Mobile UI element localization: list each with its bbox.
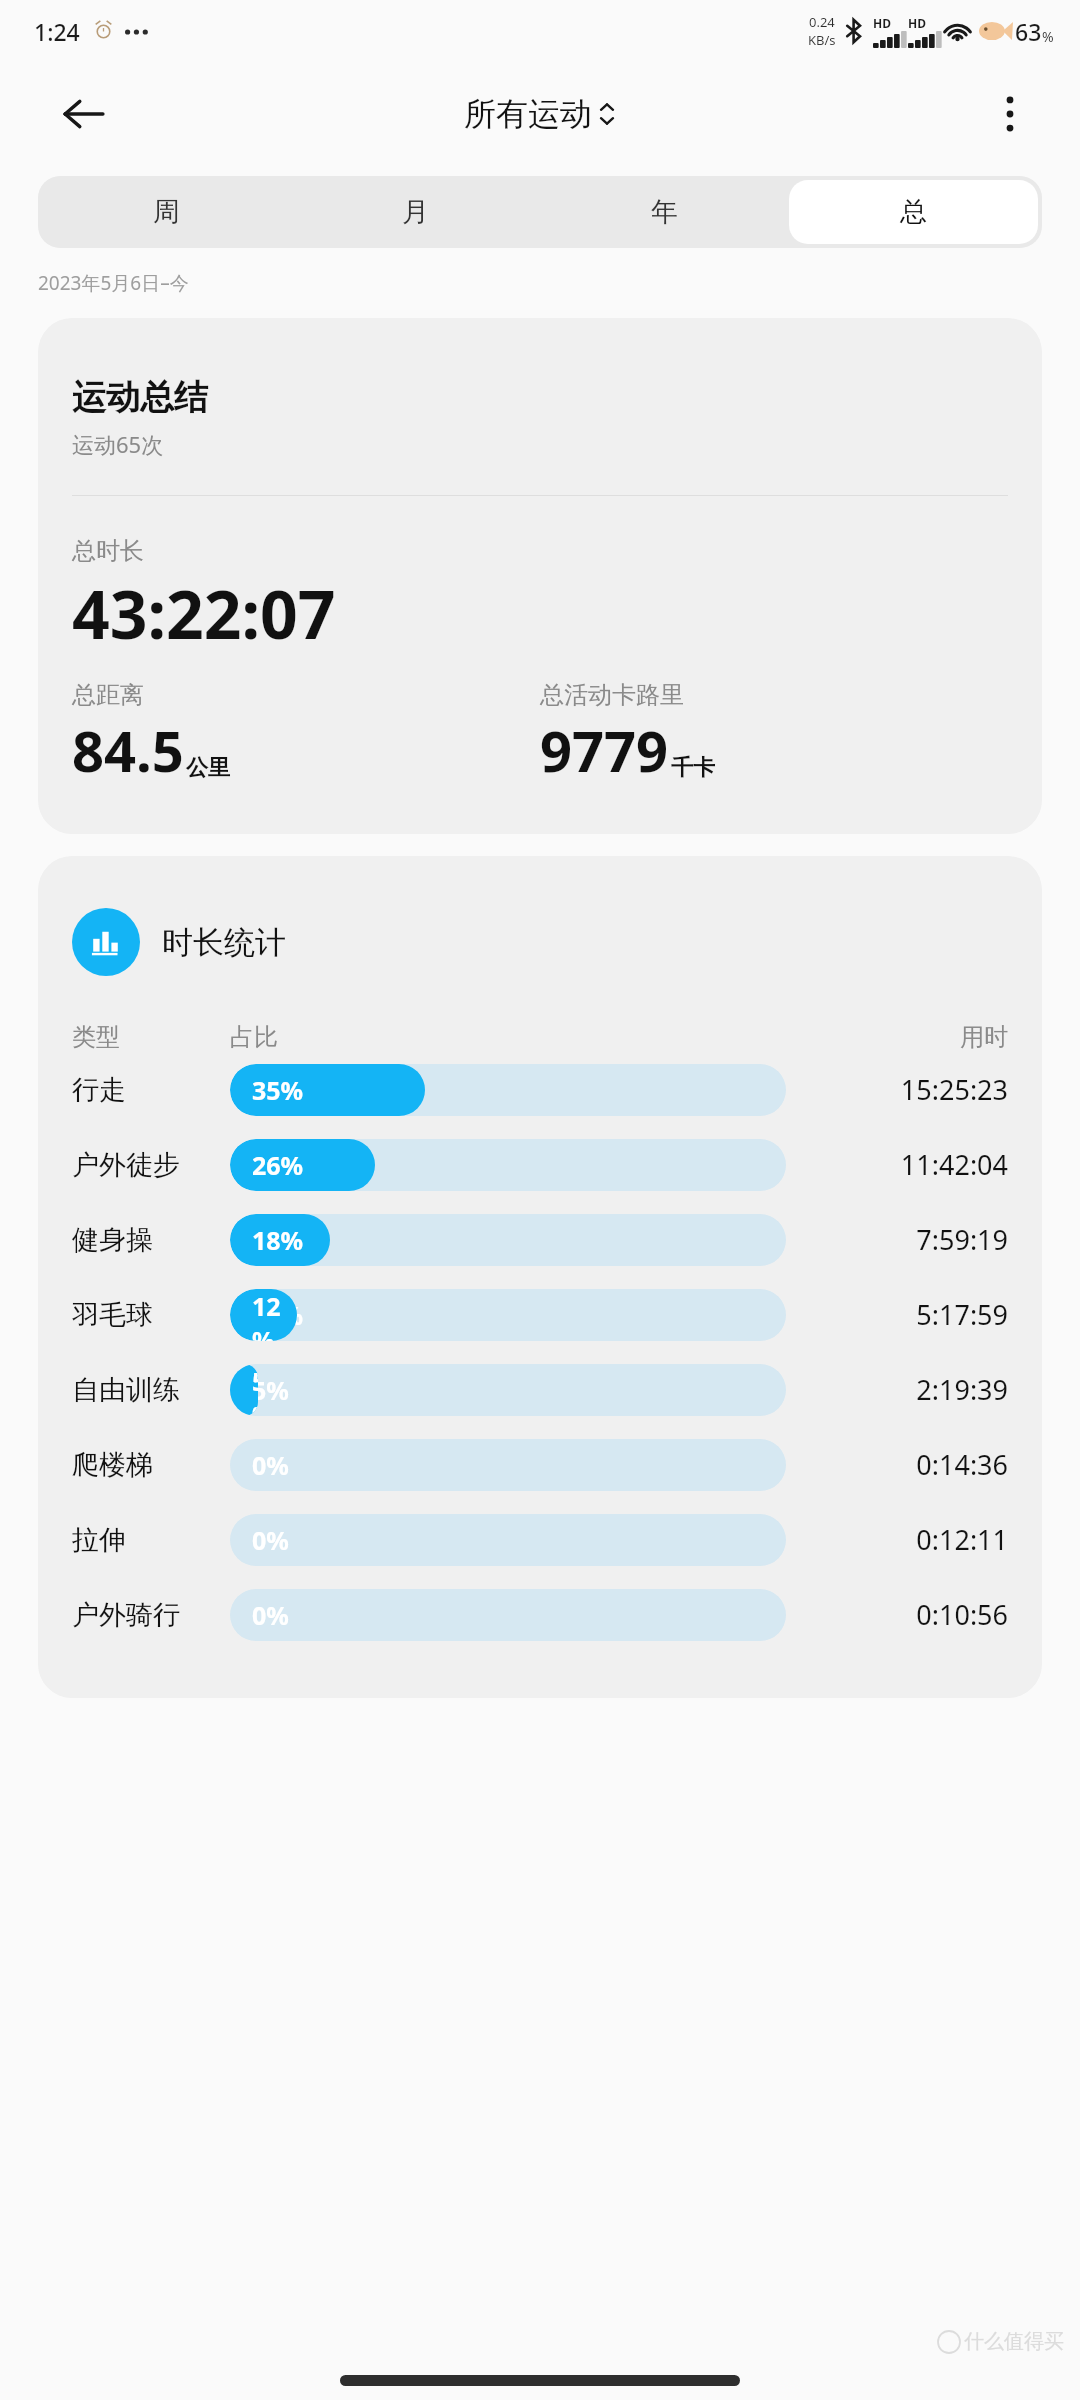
staticText: 35%	[252, 1073, 304, 1107]
button[interactable]: Back	[52, 82, 116, 146]
staticText: HD	[908, 15, 926, 31]
button[interactable]: 年	[540, 180, 789, 244]
button[interactable]: 户外徒步	[72, 1127, 1008, 1202]
button[interactable]: 羽毛球	[72, 1277, 1008, 1352]
staticText: 总时长	[72, 536, 144, 566]
button[interactable]: 户外骑行	[72, 1577, 1008, 1652]
staticText: 2023年5月6日–今	[38, 270, 189, 296]
staticText: 拉伸	[72, 1523, 230, 1557]
staticText: %	[1042, 27, 1054, 46]
staticText: 1:24	[34, 16, 80, 47]
button[interactable]: 周	[42, 180, 291, 244]
staticText: 户外徒步	[72, 1148, 230, 1182]
staticText: 类型	[72, 1022, 230, 1052]
staticText: 所有运动	[464, 94, 592, 134]
button[interactable]: More options	[978, 82, 1042, 146]
staticText: 周	[153, 195, 180, 229]
button[interactable]: 健身操	[72, 1202, 1008, 1277]
staticText: 15:25:23	[812, 1071, 1008, 1108]
staticText: 什么值得买	[964, 2329, 1064, 2354]
staticText: 0:10:56	[812, 1596, 1008, 1633]
staticText: 时长统计	[162, 923, 286, 962]
button[interactable]: 运动总结	[38, 318, 1042, 834]
staticText: 总距离	[72, 680, 144, 710]
staticText: 健身操	[72, 1223, 230, 1257]
staticText: 12%	[252, 1298, 304, 1332]
button[interactable]: 行走	[72, 1052, 1008, 1127]
staticText: 占比	[230, 1022, 960, 1052]
staticText: HD	[873, 15, 891, 31]
staticText: 户外骑行	[72, 1598, 230, 1632]
button[interactable]: 自由训练	[72, 1352, 1008, 1427]
staticText: 11:42:04	[812, 1146, 1008, 1183]
button[interactable]: 月	[291, 180, 540, 244]
staticText: 羽毛球	[72, 1298, 230, 1332]
staticText: 35%	[252, 1073, 304, 1107]
staticText: 行走	[72, 1073, 230, 1107]
staticText: 7:59:19	[812, 1221, 1008, 1258]
staticText: 运动总结	[72, 376, 208, 419]
staticText: 0%	[252, 1598, 289, 1632]
button[interactable]: 所有运动	[456, 88, 624, 140]
staticText: 总活动卡路里	[540, 680, 684, 710]
staticText: 5%	[252, 1373, 289, 1407]
staticText: 26%	[252, 1148, 304, 1182]
button[interactable]: 拉伸	[72, 1502, 1008, 1577]
staticText: KB/s	[808, 31, 836, 49]
staticText: 0.24	[809, 13, 835, 31]
staticText: 总	[900, 195, 927, 229]
staticText: 18%	[252, 1223, 304, 1257]
staticText: 0%	[252, 1523, 289, 1557]
staticText: 月	[402, 195, 429, 229]
staticText: 9779	[540, 712, 669, 788]
button[interactable]: 总	[789, 180, 1038, 244]
staticText: 爬楼梯	[72, 1448, 230, 1482]
staticText: 0%	[252, 1448, 289, 1482]
staticText: 5:17:59	[812, 1296, 1008, 1333]
staticText: 2:19:39	[812, 1371, 1008, 1408]
button[interactable]: 爬楼梯	[72, 1427, 1008, 1502]
staticText: 84.5	[72, 712, 184, 788]
staticText: 运动65次	[72, 429, 164, 459]
staticText: 18%	[252, 1223, 304, 1257]
staticText: 年	[651, 195, 678, 229]
staticText: 26%	[252, 1148, 304, 1182]
staticText: 公里	[186, 754, 230, 782]
staticText: 43:22:07	[72, 568, 336, 658]
staticText: 5%	[252, 1364, 258, 1416]
staticText: 千卡	[671, 754, 715, 782]
staticText: 0:14:36	[812, 1446, 1008, 1483]
staticText: 自由训练	[72, 1373, 230, 1407]
staticText: 12%	[252, 1289, 297, 1341]
staticText: 63	[1015, 16, 1042, 47]
staticText: 用时	[960, 1022, 1008, 1052]
staticText: 0:12:11	[812, 1521, 1008, 1558]
